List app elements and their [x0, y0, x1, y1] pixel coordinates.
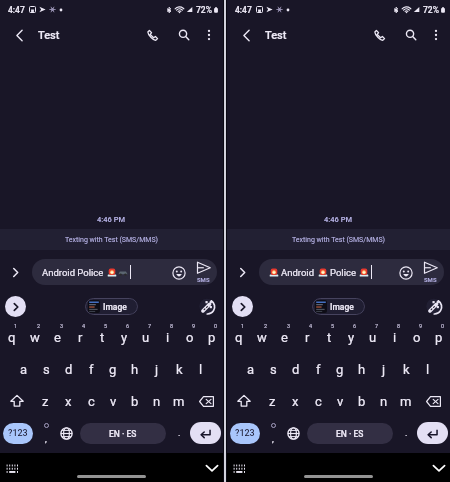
button[interactable]: Search [398, 22, 424, 48]
button[interactable]: ?123 [3, 423, 33, 444]
button[interactable]: Call [140, 22, 166, 48]
button[interactable]: l [417, 355, 439, 384]
button[interactable]: More options [425, 24, 447, 46]
staticText: Police [330, 267, 356, 278]
button[interactable]: 6 [340, 318, 362, 352]
staticText: n [153, 394, 161, 409]
button[interactable]: Image [85, 298, 138, 315]
button[interactable]: 3 [273, 318, 296, 352]
button[interactable]: 0 [428, 318, 450, 352]
button[interactable]: v [329, 386, 351, 416]
button[interactable]: Android [259, 259, 444, 285]
button[interactable]: Magic compose [197, 296, 218, 317]
button[interactable]: EN · ES [307, 423, 393, 444]
button[interactable]: g [102, 355, 124, 384]
button[interactable]: , [36, 423, 56, 443]
button[interactable]: 5 [91, 318, 113, 352]
button[interactable]: Backspace [190, 386, 223, 416]
button[interactable]: m [395, 386, 417, 416]
button[interactable]: Switch language [55, 420, 77, 446]
button[interactable]: Send SMS [190, 261, 216, 283]
button[interactable]: EN · ES [80, 423, 166, 444]
button[interactable]: 2 [23, 318, 46, 352]
button[interactable]: Search [171, 22, 197, 48]
button[interactable]: z [261, 386, 284, 416]
staticText: b [131, 394, 139, 409]
button[interactable]: Hide keyboard [201, 457, 223, 479]
button[interactable]: . [170, 420, 188, 446]
button[interactable]: s [262, 355, 285, 384]
button[interactable]: f [80, 355, 102, 384]
button[interactable]: b [351, 386, 373, 416]
button[interactable]: j [146, 355, 168, 384]
button[interactable]: Keyboard [1, 457, 23, 479]
button[interactable]: Switch language [282, 420, 304, 446]
button[interactable]: 1 [0, 318, 23, 352]
button[interactable]: c [80, 386, 102, 416]
button[interactable]: k [395, 355, 417, 384]
button[interactable]: f [307, 355, 329, 384]
button[interactable]: b [124, 386, 146, 416]
button[interactable]: v [102, 386, 124, 416]
button[interactable]: Hide keyboard [428, 457, 450, 479]
button[interactable]: Shift [0, 386, 34, 416]
button[interactable]: Enter [190, 422, 221, 444]
button[interactable]: n [146, 386, 168, 416]
button[interactable]: Send SMS [417, 261, 443, 283]
button[interactable]: More options [5, 296, 26, 317]
button[interactable]: x [57, 386, 80, 416]
button[interactable]: Emoji [169, 263, 188, 282]
staticText: m [400, 394, 412, 409]
button[interactable]: Android Police [32, 259, 217, 285]
button[interactable]: g [329, 355, 351, 384]
staticText: 4:47 [235, 5, 252, 15]
button[interactable]: n [373, 386, 395, 416]
button[interactable]: 0 [201, 318, 223, 352]
button[interactable]: a [12, 355, 35, 384]
button[interactable]: c [307, 386, 329, 416]
button[interactable]: j [373, 355, 395, 384]
button[interactable]: Expand [4, 261, 26, 283]
button[interactable]: 3 [46, 318, 69, 352]
button[interactable]: 7 [135, 318, 157, 352]
button[interactable]: More options [232, 296, 253, 317]
button[interactable]: Back [6, 22, 32, 48]
button[interactable]: z [34, 386, 57, 416]
button[interactable]: Shift [227, 386, 261, 416]
button[interactable]: 9 [406, 318, 428, 352]
button[interactable]: s [35, 355, 58, 384]
button[interactable]: 8 [157, 318, 179, 352]
button[interactable]: 1 [227, 318, 250, 352]
button[interactable]: a [239, 355, 262, 384]
button[interactable]: 7 [362, 318, 384, 352]
button[interactable]: , [263, 423, 283, 443]
button[interactable]: Emoji [396, 263, 415, 282]
button[interactable]: 4 [69, 318, 91, 352]
button[interactable]: 9 [179, 318, 201, 352]
button[interactable]: 8 [384, 318, 406, 352]
button[interactable]: Back [233, 22, 259, 48]
button[interactable]: d [58, 355, 80, 384]
button[interactable]: Image [312, 298, 365, 315]
button[interactable]: 2 [250, 318, 273, 352]
button[interactable]: h [124, 355, 146, 384]
button[interactable]: x [284, 386, 307, 416]
staticText: 8 [170, 323, 174, 329]
button[interactable]: ?123 [230, 423, 260, 444]
button[interactable]: Enter [417, 422, 448, 444]
button[interactable]: More options [198, 24, 220, 46]
button[interactable]: 6 [113, 318, 135, 352]
button[interactable]: 5 [318, 318, 340, 352]
button[interactable]: . [397, 420, 415, 446]
button[interactable]: d [285, 355, 307, 384]
button[interactable]: h [351, 355, 373, 384]
button[interactable]: m [168, 386, 190, 416]
button[interactable]: Call [367, 22, 393, 48]
button[interactable]: Expand [231, 261, 253, 283]
button[interactable]: l [190, 355, 212, 384]
button[interactable]: Magic compose [424, 296, 445, 317]
button[interactable]: 4 [296, 318, 318, 352]
button[interactable]: k [168, 355, 190, 384]
button[interactable]: Backspace [417, 386, 450, 416]
button[interactable]: Keyboard [228, 457, 250, 479]
